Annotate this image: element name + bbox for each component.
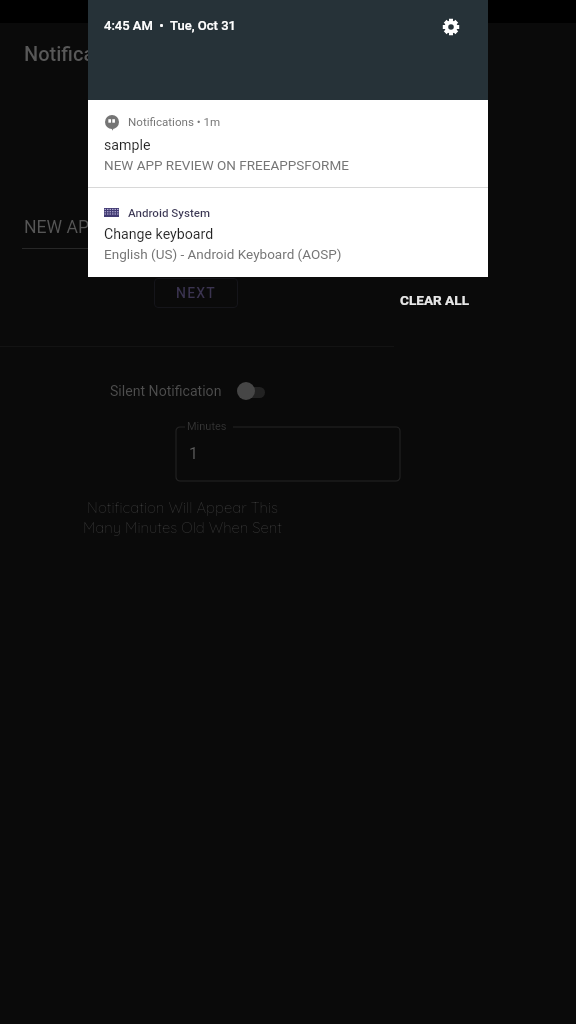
staticText: NEW APP REVIEW ON FREEAPPSFORME [24, 217, 344, 238]
staticText: CLEAR ALL [400, 292, 469, 308]
staticText: Change keyboard [104, 226, 214, 243]
staticText: NEXT [176, 285, 217, 301]
button[interactable]: NEXT [154, 278, 238, 308]
staticText: Minutes [187, 420, 227, 433]
staticText: NEW APP REVIEW ON FREEAPPSFORME [104, 157, 349, 173]
button[interactable]: Notification settings [442, 18, 460, 36]
staticText: Notification Will Appear This Many Minut… [60, 498, 305, 537]
staticText: Notification Title [24, 42, 173, 65]
staticText: English (US) - Android Keyboard (AOSP) [104, 246, 342, 262]
staticText: 4:45 AM • Tue, Oct 31 [104, 18, 236, 33]
staticText: sample [104, 137, 151, 154]
staticText: Android System [128, 206, 211, 220]
button[interactable]: Silent Notification toggle [234, 380, 268, 403]
button[interactable]: CLEAR ALL [400, 292, 469, 308]
button[interactable]: Android System [88, 188, 488, 277]
staticText: Silent Notification [110, 383, 222, 400]
staticText: 1 [189, 444, 198, 463]
button[interactable]: Notifications • 1m [88, 100, 488, 187]
button[interactable]: Minutes [176, 427, 400, 481]
staticText: Notifications • 1m [128, 115, 221, 129]
